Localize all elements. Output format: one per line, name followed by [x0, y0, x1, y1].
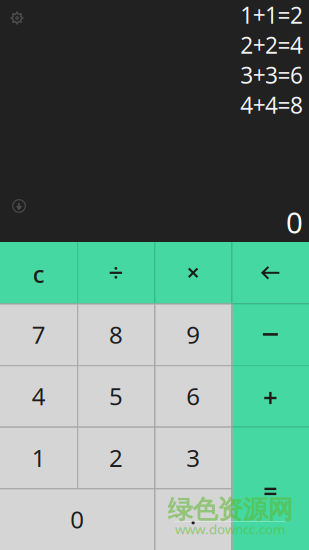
staticText: 2: [109, 442, 123, 474]
button[interactable]: Settings: [2, 3, 32, 33]
staticText: 9: [186, 318, 200, 350]
staticText: 5: [109, 380, 123, 412]
staticText: 1+1=2: [240, 0, 303, 30]
staticText: 3: [186, 442, 200, 474]
button[interactable]: [232, 365, 309, 427]
button[interactable]: [154, 242, 232, 304]
staticText: 3+3=6: [240, 60, 303, 90]
button[interactable]: 2: [77, 427, 154, 488]
staticText: 4: [32, 380, 46, 412]
staticText: 1: [32, 442, 46, 474]
button[interactable]: 9: [154, 304, 232, 365]
staticText: www.downcc.com: [175, 520, 285, 538]
button[interactable]: c: [0, 242, 77, 304]
button[interactable]: [232, 304, 309, 365]
button[interactable]: 4: [0, 365, 77, 427]
button[interactable]: [154, 488, 232, 550]
button[interactable]: Download history: [4, 191, 34, 221]
staticText: 0: [286, 202, 303, 241]
button[interactable]: [232, 242, 309, 304]
button[interactable]: 8: [77, 304, 154, 365]
staticText: c: [33, 258, 45, 290]
button[interactable]: 3: [154, 427, 232, 488]
staticText: 8: [109, 318, 123, 350]
button[interactable]: [77, 242, 154, 304]
button[interactable]: 7: [0, 304, 77, 365]
staticText: 4+4=8: [240, 90, 303, 120]
button[interactable]: 5: [77, 365, 154, 427]
staticText: 7: [32, 318, 46, 350]
button[interactable]: 6: [154, 365, 232, 427]
staticText: 绿色资源网: [167, 494, 292, 525]
button[interactable]: 0: [0, 488, 154, 550]
button[interactable]: 1: [0, 427, 77, 488]
button[interactable]: [232, 427, 309, 550]
staticText: 0: [70, 503, 84, 535]
staticText: 6: [186, 380, 200, 412]
staticText: 2+2=4: [240, 30, 303, 60]
